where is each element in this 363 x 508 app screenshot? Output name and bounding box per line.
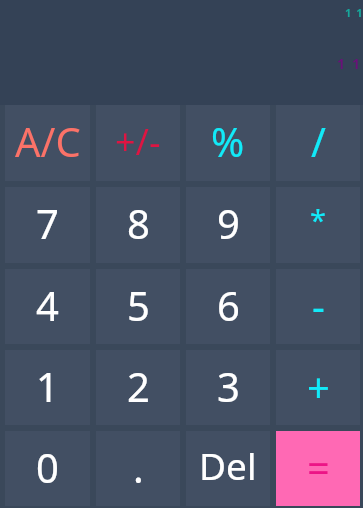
button[interactable]: 6	[186, 269, 270, 344]
staticText: 11	[345, 5, 363, 20]
button[interactable]: Equals	[276, 431, 360, 506]
staticText: Del	[199, 440, 257, 490]
button[interactable]: Divide	[276, 105, 360, 181]
button[interactable]: Toggle sign	[96, 105, 180, 181]
staticText: .	[133, 440, 144, 494]
button[interactable]: All clear	[5, 105, 90, 181]
button[interactable]: 0	[5, 431, 90, 506]
button[interactable]: 8	[96, 187, 180, 263]
staticText: /	[311, 114, 326, 168]
button[interactable]: 1	[5, 350, 90, 425]
button[interactable]: Plus	[276, 350, 360, 425]
staticText: 7	[36, 196, 59, 250]
button[interactable]: 3	[186, 350, 270, 425]
button[interactable]: 7	[5, 187, 90, 263]
staticText: +	[307, 359, 330, 413]
button[interactable]: Del	[186, 431, 270, 506]
staticText: =	[307, 440, 330, 494]
staticText: 9	[217, 196, 240, 250]
button[interactable]: Percent	[186, 105, 270, 181]
button[interactable]: 9	[186, 187, 270, 263]
staticText: 1	[36, 359, 59, 413]
staticText: -	[312, 278, 325, 332]
button[interactable]: Minus	[276, 269, 360, 344]
staticText: %	[211, 114, 245, 168]
button[interactable]: 4	[5, 269, 90, 344]
staticText: A/C	[15, 114, 81, 168]
staticText: *	[310, 200, 326, 239]
staticText: 5	[127, 278, 150, 332]
button[interactable]: Multiply	[276, 187, 360, 263]
staticText: 2	[127, 359, 150, 413]
button[interactable]: 5	[96, 269, 180, 344]
staticText: 4	[36, 278, 59, 332]
staticText: +/-	[115, 117, 161, 166]
button[interactable]: 2	[96, 350, 180, 425]
button[interactable]: .	[96, 431, 180, 506]
staticText: 6	[217, 278, 240, 332]
staticText: 0	[36, 440, 59, 494]
staticText: 11	[337, 54, 363, 73]
staticText: 8	[127, 196, 150, 250]
staticText: 3	[217, 359, 240, 413]
